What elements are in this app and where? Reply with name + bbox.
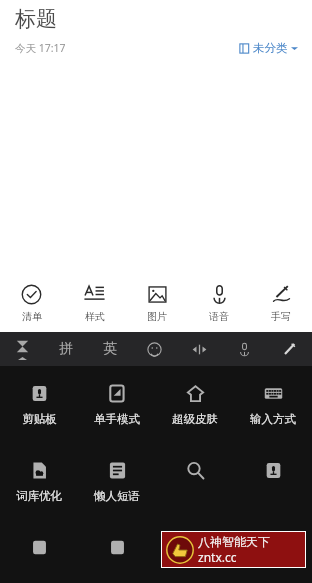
staticText: zntx.cc	[198, 549, 237, 565]
button[interactable]: 更多1	[0, 530, 78, 583]
staticText: 样式	[85, 310, 105, 323]
button[interactable]: 更多2	[78, 530, 156, 583]
button[interactable]: 语音	[234, 453, 312, 518]
staticText: 英	[103, 340, 117, 358]
button[interactable]: 移动光标	[177, 332, 222, 366]
staticText: 输入方式	[250, 412, 296, 426]
button[interactable]: 更多3	[156, 530, 234, 583]
staticText: 词库优化	[16, 489, 62, 503]
button[interactable]: 超级皮肤	[156, 376, 234, 441]
button[interactable]: 手写输入	[267, 332, 312, 366]
button[interactable]: 搜索	[156, 453, 234, 518]
staticText: 懒人短语	[94, 489, 140, 503]
button[interactable]: 语音输入	[222, 332, 267, 366]
staticText: 未分类	[253, 41, 288, 55]
button[interactable]: 未分类	[237, 39, 300, 57]
button[interactable]: 输入法 Logo	[0, 332, 44, 366]
button[interactable]: 剪贴板	[0, 376, 78, 441]
button[interactable]: 样式	[63, 274, 126, 332]
staticText: 剪贴板	[22, 412, 57, 426]
button[interactable]: 更多4	[234, 530, 312, 583]
button[interactable]: 单手模式	[78, 376, 156, 441]
button[interactable]: 图片	[126, 274, 188, 332]
button[interactable]: 英	[88, 332, 132, 366]
button[interactable]: 表情	[132, 332, 177, 366]
button[interactable]: 拼	[44, 332, 88, 366]
staticText: 超级皮肤	[172, 412, 218, 426]
button[interactable]: 输入方式	[234, 376, 312, 441]
button[interactable]: 懒人短语	[78, 453, 156, 518]
staticText: 手写	[271, 310, 291, 323]
button[interactable]: 手写	[250, 274, 312, 332]
staticText: 拼	[59, 340, 73, 358]
staticText: 图片	[147, 310, 167, 323]
button[interactable]: 语音	[188, 274, 250, 332]
staticText: 今天 17:17	[15, 41, 66, 55]
staticText: 单手模式	[94, 412, 140, 426]
staticText: 八神智能天下	[198, 534, 270, 549]
staticText: 标题	[15, 6, 57, 32]
staticText: 清单	[22, 310, 42, 323]
button[interactable]: 词库优化	[0, 453, 78, 518]
button[interactable]: 清单	[0, 274, 63, 332]
staticText: 语音	[209, 310, 229, 323]
